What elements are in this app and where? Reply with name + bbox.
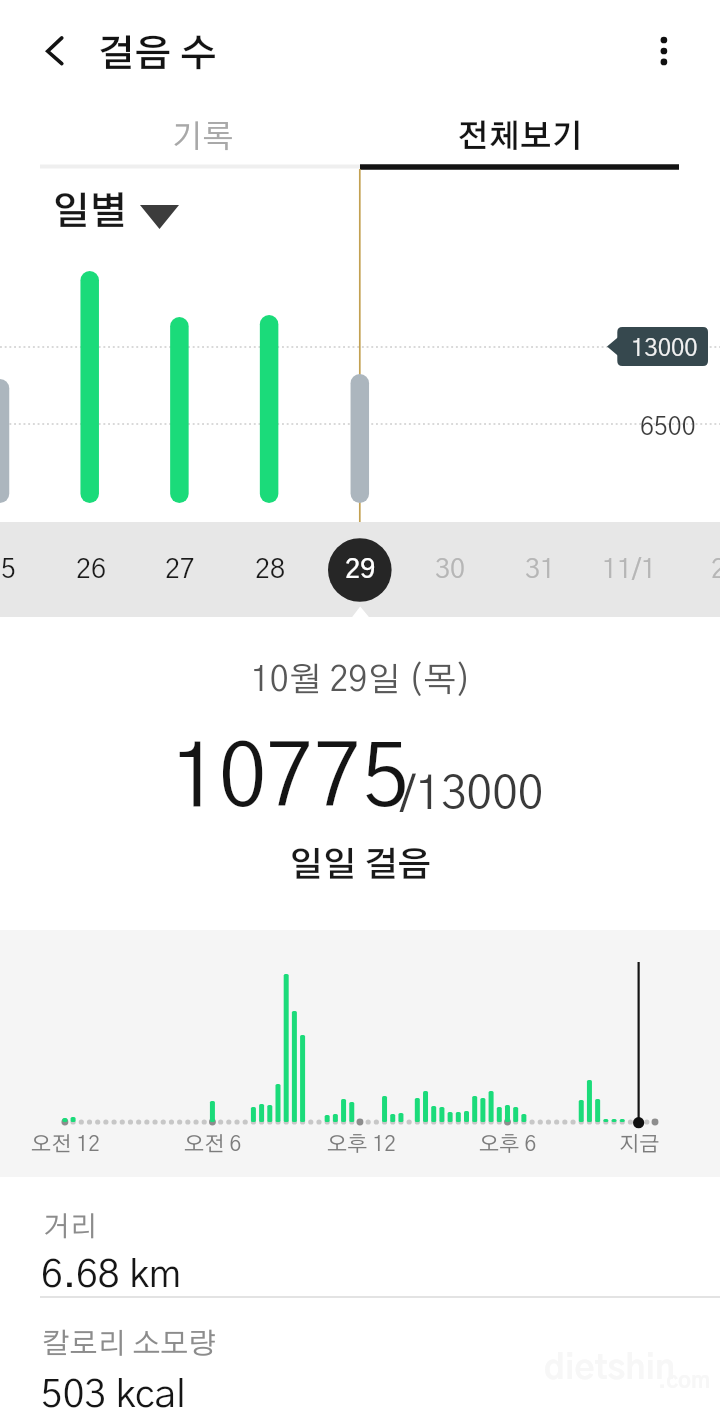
staticText: 31 — [525, 556, 556, 583]
staticText: /13000 — [400, 772, 544, 818]
button[interactable]: 일별 — [44, 188, 190, 242]
button[interactable]: 30 — [405, 522, 495, 617]
staticText: 오전 6 — [184, 1134, 242, 1155]
staticText: 걸음 수 — [98, 36, 217, 73]
staticText: 오후 12 — [327, 1134, 396, 1155]
button[interactable]: 11/1 — [584, 522, 674, 617]
button[interactable]: 28 — [225, 522, 315, 617]
staticText: 일일 걸음 — [110, 849, 610, 883]
button[interactable]: 27 — [135, 522, 225, 617]
staticText: 오전 12 — [31, 1134, 100, 1155]
staticText: 26 — [76, 556, 107, 583]
staticText: 오후 6 — [479, 1134, 537, 1155]
staticText: 25 — [0, 556, 17, 583]
staticText: 칼로리 소모량 — [42, 1330, 217, 1359]
staticText: .com — [658, 1370, 711, 1392]
button[interactable]: 기록 — [43, 103, 363, 171]
button[interactable]: 31 — [495, 522, 585, 617]
staticText: 기록 — [172, 121, 234, 153]
button[interactable]: More options — [638, 25, 690, 77]
button[interactable]: Back — [30, 25, 82, 77]
staticText: 6.68 km — [41, 1256, 182, 1295]
button[interactable]: 26 — [46, 522, 136, 617]
staticText: 27 — [165, 556, 196, 583]
button[interactable]: 29 — [315, 522, 405, 617]
staticText: 29 — [345, 556, 376, 583]
staticText: 2 — [711, 556, 720, 583]
staticText: 30 — [435, 556, 466, 583]
button[interactable]: 2 — [674, 522, 720, 617]
staticText: dietshin — [544, 1352, 675, 1386]
staticText: 28 — [255, 556, 286, 583]
staticText: 13000 — [631, 337, 698, 361]
staticText: 전체보기 — [457, 121, 583, 153]
button[interactable]: 전체보기 — [360, 103, 680, 171]
staticText: 503 kcal — [41, 1376, 186, 1414]
staticText: 거리 — [43, 1214, 97, 1242]
staticText: 10월 29일 (목) — [111, 664, 611, 698]
button[interactable]: 25 — [0, 522, 46, 617]
staticText: 6500 — [640, 415, 696, 440]
staticText: 지금 — [619, 1134, 660, 1155]
staticText: 10775 — [171, 736, 410, 822]
staticText: 11/1 — [602, 556, 657, 583]
staticText: 일별 — [52, 194, 127, 232]
